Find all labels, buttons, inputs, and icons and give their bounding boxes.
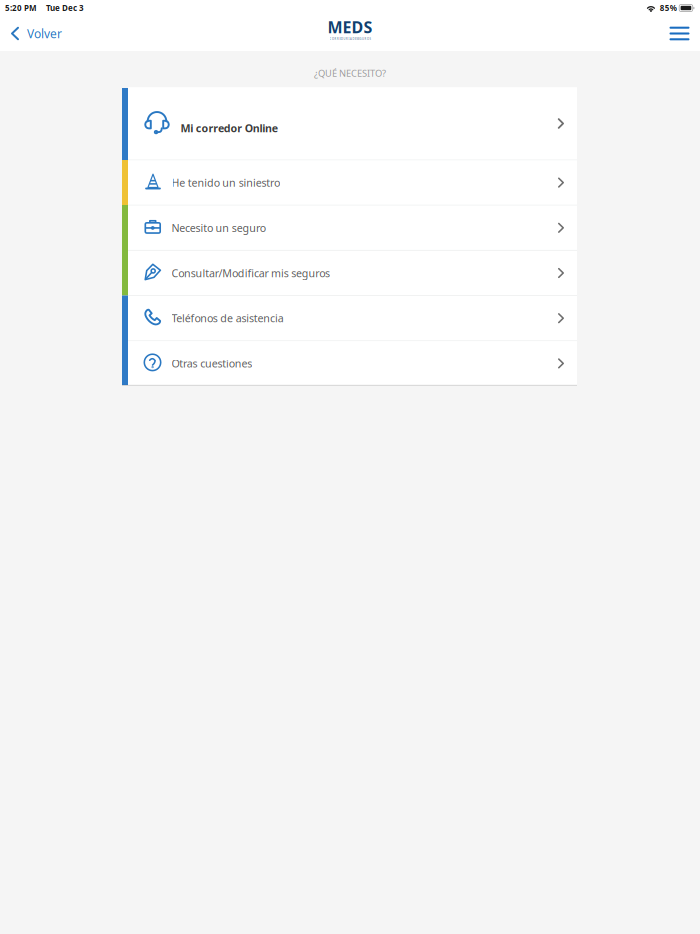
button[interactable]: Otras cuestiones (128, 341, 577, 385)
staticText: Teléfonos de asistencia (171, 311, 284, 325)
button[interactable]: Volver (0, 16, 72, 51)
staticText: Tue Dec 3 (46, 3, 84, 13)
staticText: Necesito un seguro (171, 221, 266, 235)
staticText: 5:20 PM (5, 3, 37, 13)
staticText: Mi corredor Online (180, 121, 278, 135)
staticText: MEDS (327, 16, 372, 38)
button[interactable]: Necesito un seguro (128, 206, 577, 250)
button[interactable]: Consultar/Modificar mis seguros (128, 251, 577, 295)
button[interactable]: Teléfonos de asistencia (128, 296, 577, 340)
button[interactable]: He tenido un siniestro (128, 160, 577, 205)
staticText: C O R R E D U R Í A D E S E G U R O S (329, 37, 370, 41)
staticText: Volver (27, 25, 62, 41)
staticText: 85% (660, 3, 677, 13)
staticText: Consultar/Modificar mis seguros (171, 266, 330, 280)
staticText: ¿QUÉ NECESITO? (314, 67, 386, 79)
button[interactable]: Menu (657, 16, 700, 51)
button[interactable]: Mi corredor Online (128, 87, 577, 159)
staticText: Otras cuestiones (171, 356, 252, 370)
staticText: He tenido un siniestro (171, 175, 280, 190)
